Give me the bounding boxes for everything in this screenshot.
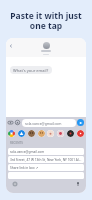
button[interactable]: Share link in box ↗	[8, 164, 84, 171]
button[interactable]: Microphone	[75, 181, 81, 187]
button[interactable]: App 0	[8, 130, 15, 137]
button[interactable]: App 3	[38, 130, 45, 137]
button[interactable]: Camera	[8, 120, 13, 125]
button[interactable]: Send	[77, 119, 84, 126]
button[interactable]: App 7	[77, 130, 84, 137]
staticText: Paste it with just one tap	[0, 10, 92, 32]
button[interactable]: App 4	[47, 130, 54, 137]
button[interactable]: sola.vance@gmail.com	[8, 148, 84, 155]
button[interactable]: 3rd Street, 47 W 13th St, New York, NY 1…	[8, 156, 84, 163]
button[interactable]: App 6	[67, 130, 74, 137]
staticText: Share link in box ↗	[10, 166, 39, 170]
staticText: sola.vance@gmail.com	[25, 121, 62, 126]
button[interactable]: App 2	[28, 130, 35, 137]
button[interactable]: Back	[8, 43, 14, 49]
staticText: 3rd Street, 47 W 13th St, New York, NY 1…	[10, 158, 82, 162]
button[interactable]: App 1	[18, 130, 25, 137]
button[interactable]: Gallery	[15, 120, 20, 125]
staticText: RECENTS	[10, 141, 23, 145]
button[interactable]: sola.vance@gmail.com	[22, 119, 76, 127]
button[interactable]: Settings	[12, 181, 18, 187]
staticText: What's your email?	[13, 68, 49, 73]
button[interactable]: App 5	[57, 130, 64, 137]
staticText: sola.vance@gmail.com	[10, 150, 45, 154]
